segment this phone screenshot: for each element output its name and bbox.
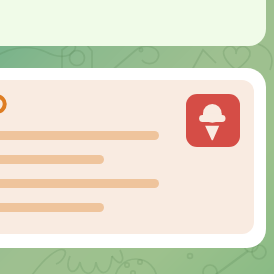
button[interactable] <box>0 0 266 46</box>
button[interactable]: Dessert category <box>186 94 240 147</box>
button[interactable]: Dessert category <box>0 68 266 248</box>
